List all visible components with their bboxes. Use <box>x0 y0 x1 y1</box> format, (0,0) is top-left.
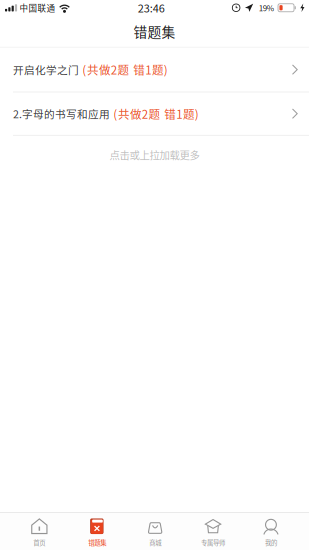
staticText: 商城 <box>149 538 161 547</box>
staticText: 首页 <box>33 538 45 547</box>
staticText: (共做2题 错1题) <box>113 105 199 122</box>
staticText: 错题集 <box>88 538 106 547</box>
button[interactable]: 2.字母的书写和应用 <box>0 92 309 136</box>
button[interactable]: 商城 <box>126 513 184 550</box>
staticText: 我的 <box>265 538 277 547</box>
button[interactable]: 我的 <box>242 513 300 550</box>
staticText: 23:46 <box>138 0 165 16</box>
button[interactable]: 开启化学之门 <box>0 48 309 92</box>
staticText: 2.字母的书写和应用 <box>13 106 110 121</box>
button[interactable]: 首页 <box>10 513 68 550</box>
staticText: 开启化学之门 <box>13 62 79 77</box>
staticText: 点击或上拉加载更多 <box>109 147 199 162</box>
staticText: (共做2题 错1题) <box>82 61 168 78</box>
button[interactable]: 错题集 <box>68 513 126 550</box>
button[interactable]: 专属导师 <box>184 513 242 550</box>
staticText: 专属导师 <box>201 538 225 547</box>
staticText: 错题集 <box>133 21 175 41</box>
staticText: 中国联通 <box>19 2 55 14</box>
staticText: 19% <box>259 2 274 14</box>
